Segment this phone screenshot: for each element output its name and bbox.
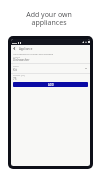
button[interactable] bbox=[11, 63, 90, 73]
staticText: Type bbox=[13, 64, 19, 67]
staticText: Appliance bbox=[19, 47, 33, 51]
staticText: Add your own appliances bbox=[26, 10, 72, 27]
staticText: Power (W) bbox=[13, 73, 25, 76]
staticText: 75 bbox=[13, 77, 17, 81]
staticText: Dishwasher bbox=[13, 58, 30, 62]
button[interactable] bbox=[11, 72, 90, 81]
staticText: ADD bbox=[48, 83, 54, 87]
staticText: Add appliance model and wattage bbox=[13, 52, 54, 55]
other: Back bbox=[13, 47, 16, 50]
staticText: Kit bbox=[13, 68, 17, 72]
button[interactable]: Back bbox=[11, 45, 90, 52]
button[interactable]: ADD bbox=[13, 82, 88, 87]
staticText: Name bbox=[13, 55, 21, 58]
button[interactable] bbox=[11, 54, 90, 63]
